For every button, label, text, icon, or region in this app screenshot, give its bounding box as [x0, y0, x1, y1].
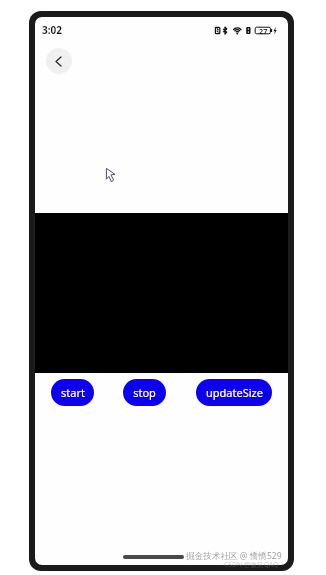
- button[interactable]: Back: [46, 48, 72, 74]
- staticText: stop: [133, 385, 156, 400]
- staticText: CSDN @微笑QAQ: [224, 560, 279, 569]
- button[interactable]: stop: [123, 379, 166, 406]
- button[interactable]: start: [51, 379, 94, 406]
- staticText: 3:02: [42, 23, 62, 37]
- staticText: updateSize: [206, 385, 263, 400]
- staticText: 27: [259, 26, 268, 36]
- staticText: 掘金技术社区 @ 憍憍529: [186, 550, 282, 562]
- button[interactable]: updateSize: [196, 379, 272, 406]
- staticText: start: [61, 385, 85, 400]
